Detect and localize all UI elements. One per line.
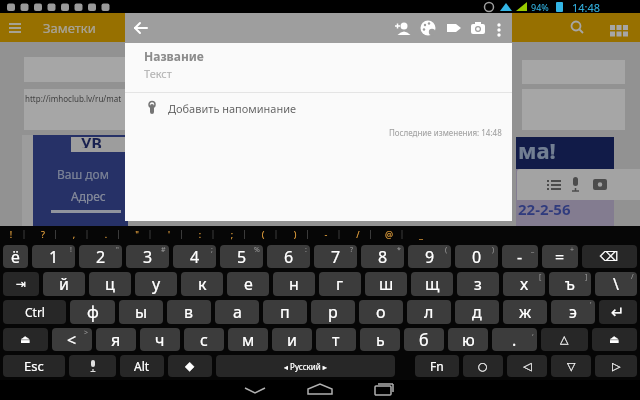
- button[interactable]: Esc: [3, 355, 65, 377]
- staticText: ю: [462, 329, 475, 351]
- button[interactable]: ш: [365, 272, 407, 296]
- button[interactable]: с: [184, 328, 224, 351]
- button[interactable]: ⏏: [3, 328, 48, 351]
- button[interactable]: [24, 57, 128, 82]
- staticText: х: [520, 273, 529, 295]
- button[interactable]: [416, 16, 440, 40]
- button[interactable]: й: [43, 272, 85, 296]
- staticText: 22-2-56: [518, 199, 571, 219]
- button[interactable]: Добавить напоминание: [125, 93, 512, 124]
- button[interactable]: ⌫: [582, 245, 637, 268]
- button[interactable]: 7: [314, 245, 357, 268]
- button[interactable]: ▷: [595, 355, 637, 377]
- button[interactable]: щ: [411, 272, 453, 296]
- staticText: ): [285, 228, 305, 240]
- button[interactable]: ◁: [507, 355, 547, 377]
- button[interactable]: [391, 16, 415, 40]
- button[interactable]: л: [407, 300, 451, 324]
- button[interactable]: ма!: [516, 137, 614, 226]
- button[interactable]: у: [135, 272, 177, 296]
- button[interactable]: 9: [408, 245, 451, 268]
- button[interactable]: 2: [79, 245, 122, 268]
- button[interactable]: http://imhoclub.lv/ru/mat: [24, 89, 128, 130]
- button[interactable]: =: [542, 245, 578, 268]
- button[interactable]: 4: [173, 245, 216, 268]
- button[interactable]: <: [52, 328, 92, 351]
- staticText: /: [348, 228, 368, 240]
- button[interactable]: ц: [89, 272, 131, 296]
- button[interactable]: [608, 16, 632, 40]
- button[interactable]: б: [404, 328, 444, 351]
- button[interactable]: [441, 16, 465, 40]
- button[interactable]: .: [492, 328, 537, 351]
- button[interactable]: ч: [140, 328, 180, 351]
- button[interactable]: ▽: [551, 355, 591, 377]
- button[interactable]: [490, 17, 512, 39]
- button[interactable]: ◂ Русский ▸: [216, 355, 395, 377]
- staticText: Alt: [134, 358, 150, 374]
- button[interactable]: ⏏: [592, 328, 637, 351]
- staticText: ,: [64, 228, 84, 240]
- button[interactable]: ь: [360, 328, 400, 351]
- button[interactable]: р: [311, 300, 355, 324]
- button[interactable]: [240, 380, 270, 400]
- button[interactable]: УВ: [22, 135, 128, 226]
- button[interactable]: 8: [361, 245, 404, 268]
- button[interactable]: в: [167, 300, 211, 324]
- button[interactable]: ё: [3, 245, 28, 268]
- button[interactable]: -: [502, 245, 538, 268]
- button[interactable]: к: [181, 272, 223, 296]
- staticText: 1: [49, 246, 59, 268]
- button[interactable]: ж: [503, 300, 547, 324]
- button[interactable]: [564, 14, 592, 42]
- button[interactable]: ъ: [549, 272, 591, 296]
- button[interactable]: [125, 13, 155, 43]
- staticText: \: [613, 273, 619, 295]
- button[interactable]: ы: [119, 300, 163, 324]
- button[interactable]: Alt: [120, 355, 164, 377]
- staticText: ы: [135, 301, 148, 323]
- button[interactable]: \: [595, 272, 637, 296]
- button[interactable]: 1: [32, 245, 75, 268]
- staticText: ма!: [518, 135, 556, 165]
- button[interactable]: △: [541, 328, 588, 351]
- button[interactable]: е: [227, 272, 269, 296]
- button[interactable]: [0, 13, 29, 42]
- button[interactable]: 0: [455, 245, 498, 268]
- button[interactable]: Fn: [415, 355, 459, 377]
- staticText: ч: [155, 329, 165, 351]
- staticText: @: [379, 228, 399, 240]
- button[interactable]: м: [228, 328, 268, 351]
- button[interactable]: Ctrl: [3, 300, 66, 324]
- button[interactable]: [69, 355, 116, 377]
- button[interactable]: г: [319, 272, 361, 296]
- button[interactable]: о: [359, 300, 403, 324]
- button[interactable]: 3: [126, 245, 169, 268]
- button[interactable]: 6: [267, 245, 310, 268]
- button[interactable]: х: [503, 272, 545, 296]
- button[interactable]: ю: [448, 328, 488, 351]
- button[interactable]: [305, 380, 335, 400]
- button[interactable]: з: [457, 272, 499, 296]
- button[interactable]: ⇥: [3, 272, 39, 296]
- button[interactable]: и: [272, 328, 312, 351]
- button[interactable]: 5: [220, 245, 263, 268]
- staticText: 0: [472, 246, 482, 268]
- button[interactable]: ↵: [599, 300, 637, 324]
- button[interactable]: [370, 380, 400, 400]
- button[interactable]: ф: [70, 300, 115, 324]
- button[interactable]: ○: [463, 355, 503, 377]
- button[interactable]: п: [263, 300, 307, 324]
- button[interactable]: я: [96, 328, 136, 351]
- button[interactable]: а: [215, 300, 259, 324]
- button[interactable]: т: [316, 328, 356, 351]
- button[interactable]: н: [273, 272, 315, 296]
- button[interactable]: [466, 16, 490, 40]
- button[interactable]: д: [455, 300, 499, 324]
- button[interactable]: ◆: [168, 355, 212, 377]
- staticText: -: [316, 228, 336, 240]
- staticText: http://imhoclub.lv/ru/mat: [25, 93, 122, 104]
- button[interactable]: э: [551, 300, 595, 324]
